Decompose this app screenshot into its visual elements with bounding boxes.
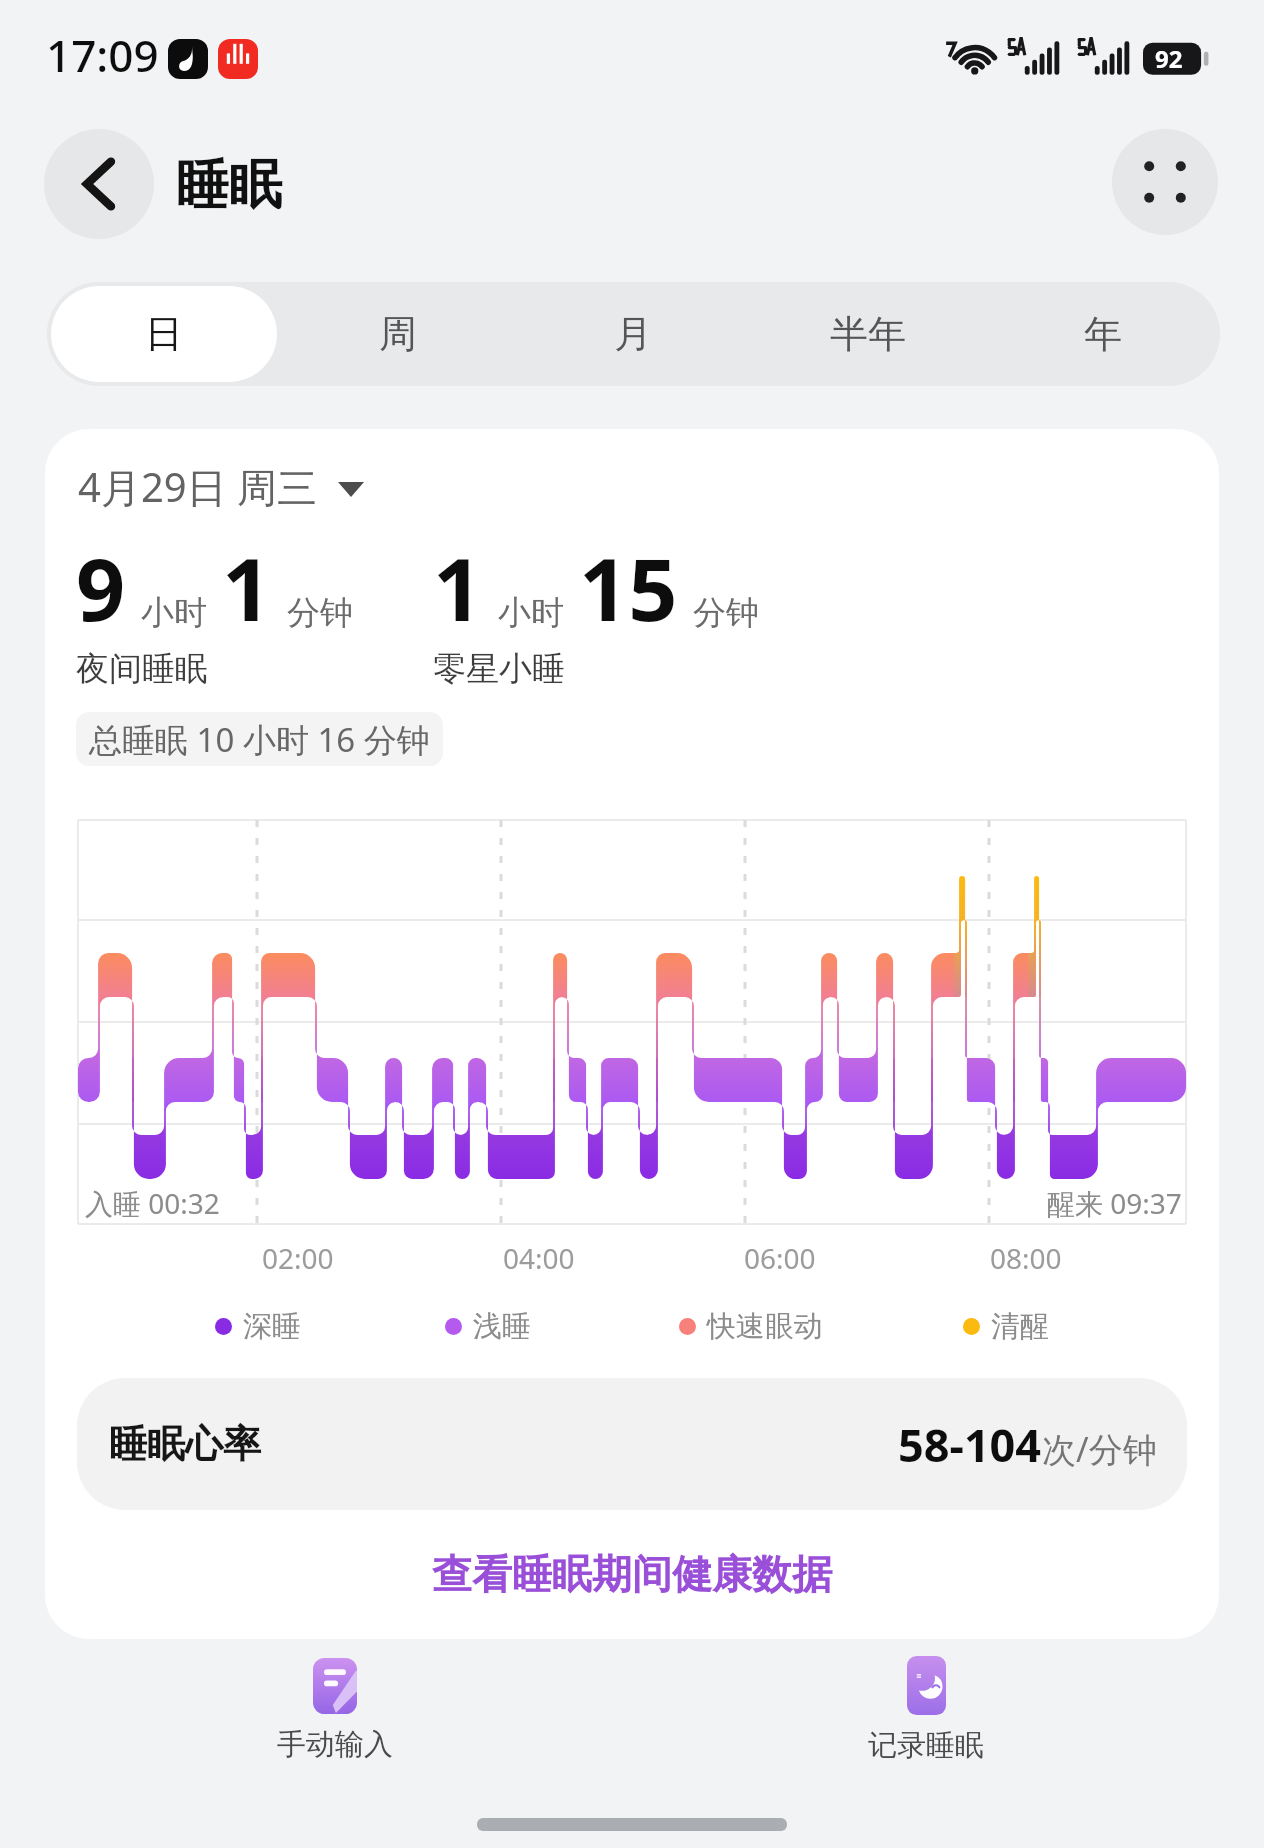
button[interactable]: 年 [985,282,1220,386]
staticText: 半年 [830,310,906,358]
button[interactable]: 月 [515,282,750,386]
button[interactable]: 睡眠心率 [77,1378,1187,1510]
staticText: 零星小睡 [433,648,565,690]
button[interactable]: Back [44,129,154,239]
staticText: 年 [1084,310,1122,358]
staticText: 58-104 [898,1414,1042,1475]
staticText: 日 [145,310,183,358]
staticText: 1 [433,529,483,646]
staticText: 小时 [141,592,207,634]
staticText: 17:09 [46,25,159,85]
staticText: 15 [579,529,678,646]
button[interactable]: 手动输入 [210,1658,460,1763]
staticText: 醒来 09:37 [1047,1184,1182,1222]
staticText: 深睡 [243,1308,301,1345]
staticText: 夜间睡眠 [76,648,208,690]
staticText: 次/分钟 [1042,1426,1157,1472]
staticText: 查看睡眠期间健康数据 [432,1549,832,1599]
staticText: 浅睡 [473,1308,531,1345]
staticText: 记录睡眠 [868,1727,984,1764]
staticText: 92 [1155,42,1183,75]
staticText: 4月29日 周三 [78,459,318,514]
button[interactable]: 周 [281,282,515,386]
staticText: 总睡眠 10 小时 16 分钟 [89,717,430,762]
staticText: 周 [379,310,417,358]
staticText: 快速眼动 [707,1308,823,1345]
staticText: 分钟 [287,592,353,634]
staticText: 月 [614,310,652,358]
button[interactable]: 日 [47,282,281,386]
staticText: 睡眠心率 [109,1420,261,1468]
staticText: 06:00 [744,1239,816,1277]
staticText: 08:00 [990,1239,1062,1277]
button[interactable]: 查看睡眠期间健康数据 [45,1544,1219,1604]
staticText: 睡眠 [176,152,282,219]
staticText: 手动输入 [277,1726,393,1763]
staticText: 入睡 00:32 [85,1184,220,1222]
staticText: 02:00 [262,1239,334,1277]
button[interactable]: More options [1112,129,1218,235]
staticText: 1 [222,529,272,646]
button[interactable]: 4月29日 周三 [78,459,364,514]
staticText: 分钟 [693,592,759,634]
button[interactable]: 记录睡眠 [801,1656,1051,1764]
button[interactable]: 半年 [750,282,985,386]
staticText: 清醒 [991,1308,1049,1345]
staticText: 9 [76,529,126,646]
staticText: 04:00 [503,1239,575,1277]
staticText: 小时 [498,592,564,634]
